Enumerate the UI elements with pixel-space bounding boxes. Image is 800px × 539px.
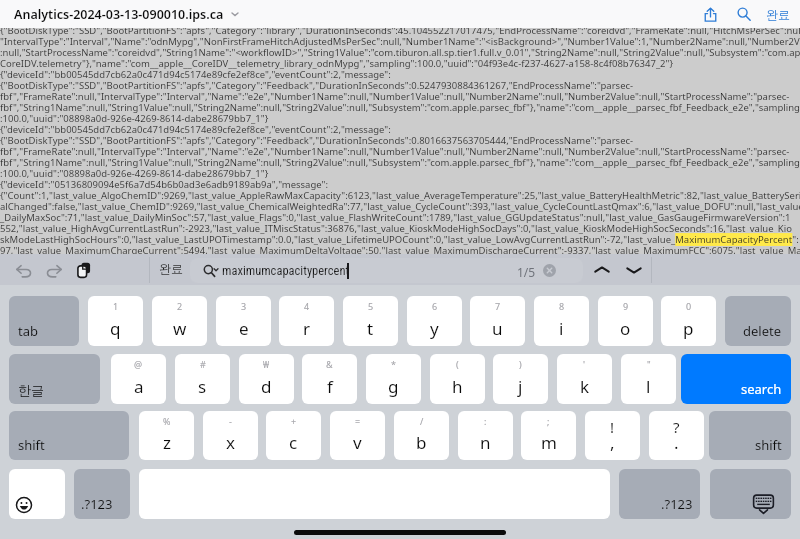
staticText: 0 bbox=[686, 300, 692, 312]
staticText: 7 bbox=[495, 300, 501, 312]
staticText: tab bbox=[18, 322, 38, 340]
staticText: 4 bbox=[304, 300, 310, 312]
staticText: ' bbox=[583, 358, 586, 370]
button[interactable]: Search bbox=[732, 2, 756, 26]
button[interactable]: Emoji bbox=[9, 469, 65, 519]
staticText: ! bbox=[610, 417, 615, 437]
button[interactable]: ₩ bbox=[239, 354, 294, 404]
button[interactable]: : bbox=[458, 411, 513, 460]
button[interactable]: 0 bbox=[661, 296, 716, 346]
staticText: m bbox=[541, 431, 557, 454]
staticText: k bbox=[580, 375, 590, 398]
staticText: r bbox=[303, 317, 311, 340]
staticText: @ bbox=[134, 358, 143, 370]
button[interactable]: % bbox=[139, 411, 194, 460]
staticText: g bbox=[388, 375, 399, 398]
button[interactable]: 3 bbox=[216, 296, 271, 346]
staticText: {"deviceId":"05136809094e5f6a7d54b6b0ad3… bbox=[0, 178, 328, 191]
staticText: q bbox=[110, 317, 121, 340]
button[interactable]: ) bbox=[493, 354, 548, 404]
staticText: v bbox=[353, 431, 362, 454]
button[interactable]: .?123 bbox=[74, 469, 130, 519]
staticText: alChanged":false,"last_value_ChemID":926… bbox=[0, 200, 800, 213]
button[interactable]: ; bbox=[521, 411, 576, 460]
button[interactable]: = bbox=[330, 411, 385, 460]
staticText: h bbox=[452, 375, 463, 398]
button[interactable]: 4 bbox=[279, 296, 334, 346]
button[interactable]: 9 bbox=[598, 296, 653, 346]
button[interactable]: Next result bbox=[622, 258, 646, 282]
staticText: l bbox=[646, 375, 651, 398]
button[interactable]: - bbox=[203, 411, 258, 460]
staticText: 5 bbox=[368, 300, 374, 312]
button[interactable]: + bbox=[266, 411, 321, 460]
staticText: fbf","String1Name":null,"String1Value":n… bbox=[0, 156, 800, 169]
staticText: ₩ bbox=[263, 358, 270, 370]
button[interactable]: tab bbox=[9, 296, 79, 346]
button[interactable]: 완료 bbox=[764, 7, 792, 22]
staticText: 완료 bbox=[159, 261, 183, 276]
button[interactable]: search bbox=[681, 354, 791, 404]
button[interactable]: maximumcapacitypercent bbox=[190, 258, 583, 283]
button[interactable]: Previous result bbox=[590, 258, 614, 282]
staticText: maximumcapacitypercent bbox=[222, 263, 350, 278]
staticText: e bbox=[239, 317, 249, 340]
staticText: p bbox=[683, 317, 694, 340]
button[interactable]: ? bbox=[649, 411, 704, 460]
button[interactable]: shift bbox=[709, 411, 791, 460]
button[interactable]: ( bbox=[430, 354, 485, 404]
button[interactable]: delete bbox=[725, 296, 791, 346]
staticText: u bbox=[492, 317, 503, 340]
button[interactable]: Clear search bbox=[543, 264, 556, 277]
staticText: i bbox=[559, 317, 564, 340]
staticText: c bbox=[289, 431, 298, 454]
staticText: w bbox=[173, 317, 187, 340]
button[interactable]: 6 bbox=[407, 296, 462, 346]
button[interactable]: 5 bbox=[343, 296, 398, 346]
staticText: o bbox=[620, 317, 631, 340]
button[interactable]: Hide keyboard bbox=[710, 469, 791, 519]
button[interactable]: 완료 bbox=[157, 261, 185, 276]
button[interactable]: shift bbox=[9, 411, 129, 460]
button[interactable]: ' bbox=[557, 354, 612, 404]
staticText: CoreIDV.telemetry"},"name":"com__apple__… bbox=[0, 57, 674, 70]
button[interactable]: Paste bbox=[72, 258, 96, 282]
button[interactable]: " bbox=[621, 354, 676, 404]
button[interactable]: Share bbox=[698, 2, 722, 26]
button[interactable]: 한글 bbox=[9, 354, 100, 404]
staticText: _DailyMaxSoc":71,"last_value_DailyMinSoc… bbox=[0, 211, 791, 224]
staticText: % bbox=[163, 415, 171, 427]
staticText: {"deviceId":"bb00545dd7cb62a0c471d94c517… bbox=[0, 68, 391, 81]
button[interactable]: Undo bbox=[12, 258, 36, 282]
staticText: :null,"StartProcessName":"coreidvd","Str… bbox=[0, 46, 800, 59]
staticText: : bbox=[484, 415, 487, 427]
staticText: fbf","FrameRate":null,"IntervalType":"In… bbox=[0, 145, 790, 158]
staticText: s bbox=[198, 375, 207, 398]
staticText: Analytics-2024-03-13-090010.ips.ca bbox=[14, 6, 224, 23]
staticText: :100.0,"uuid":"08898a0d-926e-4269-8614-d… bbox=[0, 112, 269, 125]
button[interactable]: 7 bbox=[470, 296, 525, 346]
staticText: 6 bbox=[432, 300, 438, 312]
staticText: 1 bbox=[113, 300, 119, 312]
button[interactable]: 8 bbox=[534, 296, 589, 346]
staticText: shift bbox=[755, 436, 782, 454]
staticText: = bbox=[355, 415, 361, 427]
button[interactable]: .?123 bbox=[619, 469, 700, 519]
staticText: / bbox=[420, 415, 424, 427]
staticText: {"Count":1,"last_value_AlgoChemID":9269,… bbox=[0, 189, 800, 202]
button[interactable]: * bbox=[366, 354, 421, 404]
button[interactable]: / bbox=[394, 411, 449, 460]
button[interactable]: @ bbox=[111, 354, 166, 404]
staticText: ) bbox=[519, 358, 522, 370]
button[interactable]: 1 bbox=[88, 296, 143, 346]
button[interactable]: # bbox=[175, 354, 230, 404]
staticText: 3 bbox=[241, 300, 247, 312]
staticText: shift bbox=[18, 436, 45, 454]
button[interactable]: Redo bbox=[42, 258, 66, 282]
staticText: ; bbox=[547, 415, 550, 427]
staticText: .?123 bbox=[661, 495, 693, 513]
button[interactable]: 2 bbox=[152, 296, 207, 346]
button[interactable]: ! bbox=[585, 411, 640, 460]
button[interactable]: & bbox=[302, 354, 357, 404]
